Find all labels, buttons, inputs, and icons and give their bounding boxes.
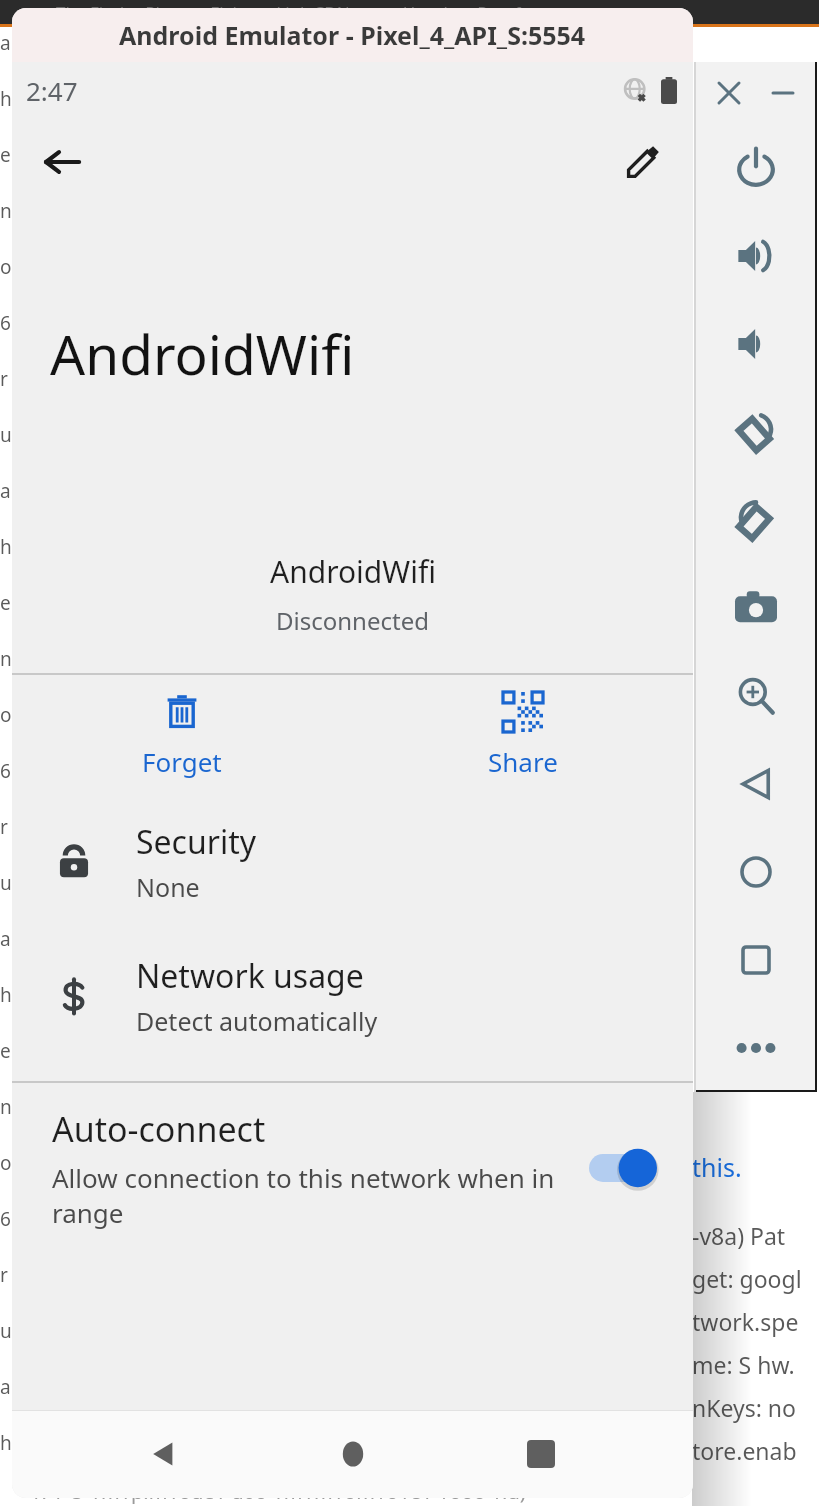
button[interactable]: Screenshot	[695, 564, 817, 652]
button[interactable]: Home	[695, 828, 817, 916]
button[interactable]: Zoom	[695, 652, 817, 740]
staticText: tore.enab	[692, 1435, 797, 1466]
button[interactable]: Forget	[12, 675, 352, 795]
button[interactable]: Share	[352, 675, 693, 795]
staticText: n	[0, 1094, 12, 1120]
staticText: o	[0, 254, 12, 280]
button[interactable]: Back	[34, 134, 90, 190]
staticText: Disconnected	[276, 604, 429, 637]
staticText: h	[0, 1430, 12, 1456]
staticText: The Finder Plu… Fixing a Link CDN … How …	[56, 1, 529, 24]
staticText: 6	[0, 310, 11, 336]
button[interactable]: Security	[12, 795, 693, 929]
button[interactable]: Edit	[615, 134, 671, 190]
staticText: this.	[692, 1150, 742, 1184]
staticText: nKeys: no	[692, 1392, 796, 1423]
button[interactable]: Back	[695, 740, 817, 828]
staticText: r	[0, 366, 8, 392]
staticText: a	[0, 1374, 11, 1400]
button[interactable]: More	[695, 1004, 817, 1092]
button[interactable]: Back	[128, 1418, 200, 1490]
staticText: u	[0, 422, 12, 448]
staticText: 6	[0, 1206, 11, 1232]
button[interactable]: Minimize	[763, 73, 803, 113]
button[interactable]: Network usage	[12, 929, 693, 1063]
staticText: o	[0, 702, 12, 728]
staticText: Allow connection to this network when in…	[52, 1160, 565, 1230]
staticText: Network usage	[136, 954, 364, 998]
staticText: Forget	[142, 744, 222, 779]
button[interactable]: Auto-connect	[12, 1083, 693, 1253]
staticText: Security	[136, 820, 257, 864]
staticText: Android Emulator - Pixel_4_API_S:5554	[119, 18, 586, 52]
staticText: 2:47	[26, 73, 78, 108]
staticText: None	[136, 870, 200, 904]
staticText: -v8a) Pat	[692, 1220, 786, 1251]
staticText: 1. 1 O 1m1p.m1oue1 u0o 1m1m1om1o1e1 1ooo…	[30, 1478, 526, 1505]
staticText: h	[0, 86, 12, 112]
staticText: Share	[488, 744, 558, 779]
staticText: a	[0, 478, 11, 504]
staticText: twork.spe	[692, 1306, 799, 1337]
button[interactable]: Rotate left	[695, 388, 817, 476]
staticText: AndroidWifi	[270, 551, 436, 592]
staticText: e	[0, 1038, 11, 1064]
staticText: o	[0, 1150, 12, 1176]
button[interactable]: Volume down	[695, 300, 817, 388]
staticText: get: googl	[692, 1263, 802, 1294]
staticText: h	[0, 534, 12, 560]
button[interactable]: Power	[695, 124, 817, 212]
staticText: h	[0, 982, 12, 1008]
staticText: AndroidWifi	[50, 316, 355, 391]
staticText: u	[0, 1318, 12, 1344]
staticText: n	[0, 198, 12, 224]
button[interactable]: Close	[709, 73, 749, 113]
staticText: Auto-connect	[52, 1106, 266, 1152]
staticText: r	[0, 814, 8, 840]
staticText: a	[0, 926, 11, 952]
button[interactable]: Recents	[505, 1418, 577, 1490]
staticText: me: S hw.	[692, 1349, 795, 1380]
button[interactable]: Home	[317, 1418, 389, 1490]
button[interactable]: Overview	[695, 916, 817, 1004]
button[interactable]: Auto-connect toggle	[589, 1144, 659, 1192]
staticText: e	[0, 590, 11, 616]
staticText: r	[0, 1262, 8, 1288]
staticText: Detect automatically	[136, 1004, 378, 1038]
button[interactable]: Volume up	[695, 212, 817, 300]
button[interactable]: Rotate right	[695, 476, 817, 564]
staticText: 6	[0, 758, 11, 784]
staticText: u	[0, 870, 12, 896]
staticText: n	[0, 646, 12, 672]
staticText: e	[0, 142, 11, 168]
staticText: a	[0, 30, 11, 56]
